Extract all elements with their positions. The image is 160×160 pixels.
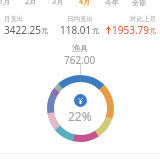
staticText: 元 <box>149 26 156 35</box>
staticText: 118.01 <box>60 23 92 37</box>
staticText: 4月 <box>79 0 91 7</box>
staticText: 元 <box>41 26 48 35</box>
staticText: 日均支出 <box>67 15 93 23</box>
staticText: 元 <box>92 26 99 35</box>
staticText: 3422.25 <box>4 23 41 37</box>
staticText: 月支出 <box>4 15 24 23</box>
button[interactable]: Expense category <box>74 94 87 107</box>
button[interactable]: 日均支出 <box>54 15 105 37</box>
staticText: 1月 <box>0 0 11 7</box>
button[interactable]: 对比上月 <box>105 15 156 37</box>
staticText: 对比上月 <box>130 15 156 23</box>
staticText: 3月 <box>52 0 64 7</box>
staticText: 762.00 <box>64 53 96 67</box>
button[interactable]: 4月 <box>71 0 98 7</box>
button[interactable]: 全部 <box>125 0 152 7</box>
button[interactable]: 月支出 <box>4 15 54 37</box>
button[interactable]: 今年 <box>98 0 125 7</box>
button[interactable]: 1月 <box>0 0 18 7</box>
staticText: 22% <box>68 108 92 124</box>
button[interactable]: 2月 <box>18 0 44 7</box>
staticText: 2月 <box>25 0 37 7</box>
staticText: 全部 <box>132 0 146 7</box>
button[interactable]: 3月 <box>44 0 71 7</box>
staticText: 1953.79 <box>112 23 149 37</box>
staticText: 今年 <box>105 0 119 7</box>
staticText: 渔具 <box>72 43 88 53</box>
